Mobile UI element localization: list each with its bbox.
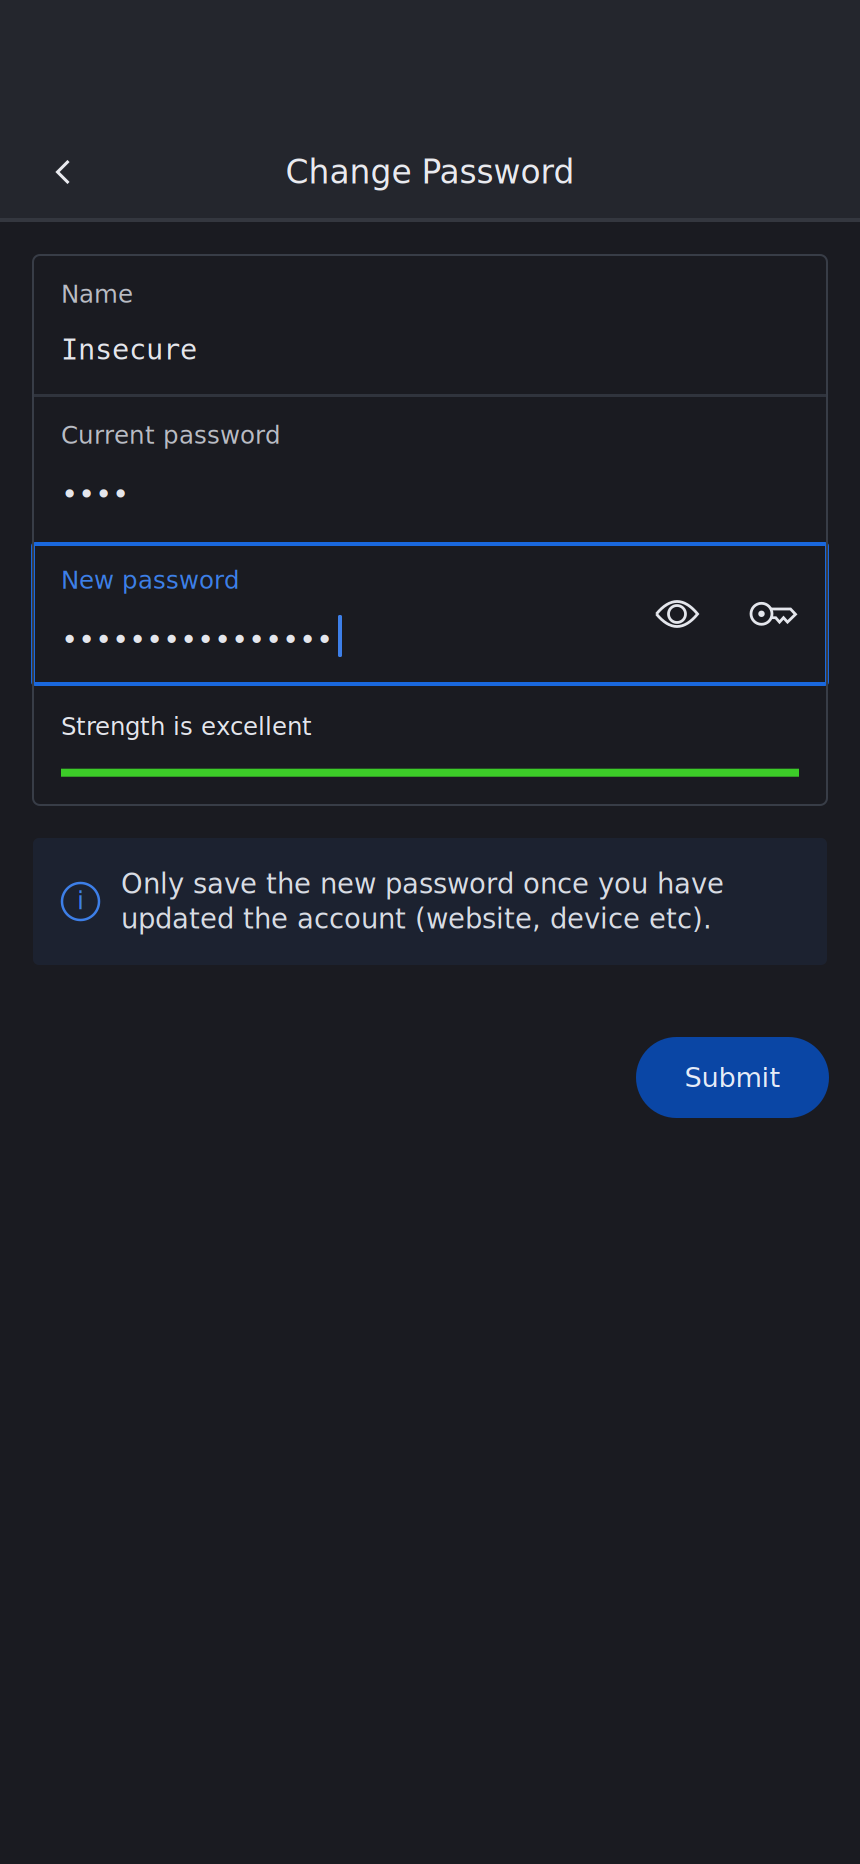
button[interactable]: Password manager (738, 583, 808, 645)
staticText: •••••••••••••••• (61, 622, 333, 656)
staticText: Current password (61, 421, 281, 450)
staticText: Submit (684, 1062, 780, 1093)
staticText: New password (61, 566, 240, 595)
staticText: i (77, 886, 84, 915)
staticText: Change Password (285, 153, 574, 191)
button[interactable]: Show password (642, 583, 712, 645)
staticText: •••• (61, 477, 129, 510)
staticText: Insecure (61, 333, 197, 366)
staticText: Name (61, 280, 133, 309)
staticText: Strength is excellent (61, 712, 312, 741)
button[interactable]: Submit (636, 1037, 829, 1118)
staticText: Only save the new password once you have (121, 868, 724, 900)
staticText: updated the account (website, device etc… (121, 903, 712, 935)
button[interactable]: Back (21, 130, 105, 214)
